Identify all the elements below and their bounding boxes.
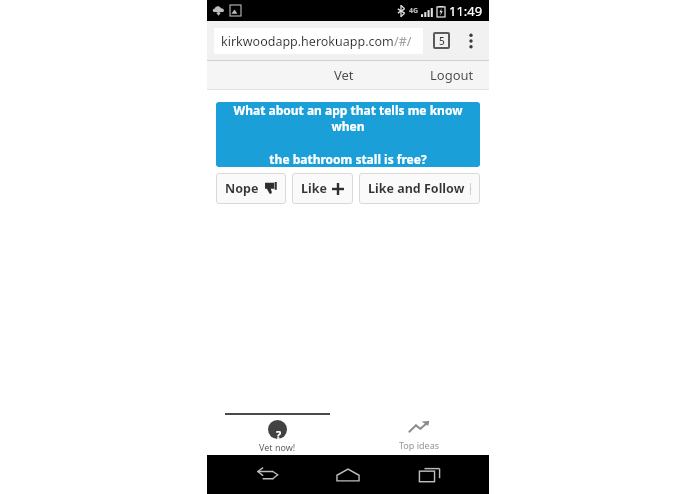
button[interactable]: Nope <box>216 173 286 204</box>
button[interactable]: Like <box>292 173 353 204</box>
staticText: Like and Follow <box>368 180 465 197</box>
staticText: Vet <box>334 66 354 84</box>
button[interactable]: Home <box>328 455 368 494</box>
staticText: 4G <box>409 6 419 16</box>
button[interactable]: Top ideas <box>348 413 489 455</box>
staticText: 11:49 <box>449 2 483 20</box>
staticText: the bathroom stall is free? <box>269 151 427 167</box>
button[interactable]: More options <box>460 30 482 52</box>
staticText: ? <box>276 427 282 442</box>
staticText: kirkwoodapp.herokuapp.com <box>221 33 394 50</box>
button[interactable]: Vet now! <box>207 413 348 455</box>
staticText: /#/ <box>394 33 412 50</box>
button[interactable]: Logout <box>420 62 484 88</box>
button[interactable]: Recent apps <box>409 455 449 494</box>
staticText: What about an app that tells me know whe… <box>224 102 472 134</box>
staticText: Vet now! <box>259 441 296 453</box>
button[interactable]: kirkwoodapp.herokuapp.com <box>214 28 423 54</box>
staticText: Like <box>301 180 327 197</box>
button[interactable]: Vet <box>324 62 364 88</box>
button[interactable]: What about an app that tells me know whe… <box>216 102 480 167</box>
staticText: Top ideas <box>399 439 439 451</box>
staticText: Nope <box>225 180 259 197</box>
button[interactable]: Back <box>248 455 288 494</box>
staticText: 5 <box>439 34 445 48</box>
button[interactable]: Tabs <box>433 32 450 49</box>
staticText: Logout <box>430 66 474 84</box>
button[interactable]: Like and Follow <box>359 173 480 204</box>
